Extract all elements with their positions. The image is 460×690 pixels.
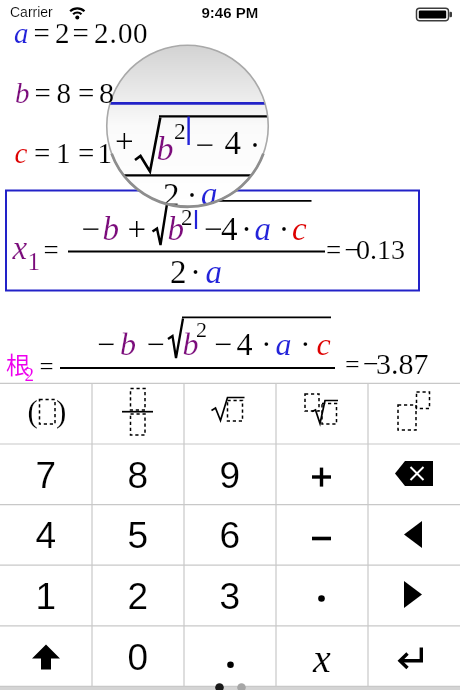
button[interactable] [276,565,368,626]
button[interactable] [276,444,368,505]
button[interactable] [368,565,460,626]
button[interactable] [184,565,276,626]
button[interactable] [92,626,184,687]
button[interactable] [184,505,276,566]
button[interactable] [368,383,460,444]
button[interactable] [92,505,184,566]
button[interactable] [0,565,92,626]
button[interactable] [0,22,460,64]
button[interactable] [276,383,368,444]
button[interactable] [92,383,184,444]
button[interactable] [368,505,460,566]
button[interactable] [92,444,184,505]
button[interactable] [0,383,92,444]
button[interactable] [184,383,276,444]
button[interactable] [92,565,184,626]
button[interactable] [184,444,276,505]
button[interactable] [184,626,276,687]
button[interactable] [0,505,92,566]
button[interactable] [276,505,368,566]
button[interactable] [368,444,460,505]
button[interactable] [0,82,460,124]
button[interactable] [368,626,460,687]
button[interactable] [0,142,460,184]
button[interactable] [5,190,420,291]
button[interactable] [0,626,92,687]
button[interactable] [0,444,92,505]
button[interactable] [0,300,460,383]
button[interactable] [276,626,368,687]
